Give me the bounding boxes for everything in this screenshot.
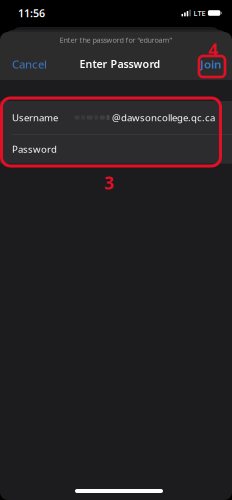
staticText: Username (12, 111, 58, 124)
button[interactable]: Cancel (0, 53, 59, 75)
staticText: 3 (104, 171, 114, 195)
staticText: LTE (193, 8, 205, 18)
staticText: 4 (208, 38, 218, 62)
staticText: Join (200, 56, 221, 72)
staticText: Cancel (12, 56, 47, 72)
button[interactable]: Password (0, 135, 232, 164)
staticText: Enter the password for “eduroam” (59, 35, 172, 45)
staticText: 11:56 (18, 6, 45, 20)
staticText: Password (12, 143, 57, 156)
staticText: @dawsoncollege.qc.ca (112, 111, 215, 124)
staticText: Enter Password (79, 57, 160, 71)
button[interactable]: Join (189, 53, 232, 75)
button[interactable]: Username (0, 101, 232, 134)
